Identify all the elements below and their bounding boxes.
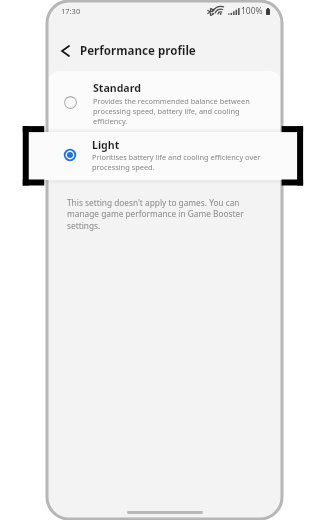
staticText: 100%	[241, 5, 263, 17]
staticText: 17:30	[61, 6, 81, 16]
staticText: Light	[92, 138, 120, 152]
staticText: Provides the recommended balance between…	[93, 96, 251, 126]
staticText: Performance profile	[80, 43, 196, 59]
button[interactable]: Light	[29, 132, 297, 180]
button[interactable]: Back	[53, 39, 77, 63]
staticText: Prioritises battery life and cooling eff…	[92, 152, 282, 172]
button[interactable]: Standard	[47, 77, 282, 129]
staticText: This setting doesn't apply to games. You…	[67, 197, 245, 232]
staticText: Standard	[93, 81, 141, 95]
